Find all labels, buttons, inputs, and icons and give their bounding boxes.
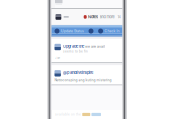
staticText: Check In — [104, 29, 119, 33]
staticText: Notes — [88, 14, 98, 19]
button[interactable]: Download on the App Store — [82, 113, 90, 116]
staticText: @pandliveinspire — [63, 70, 93, 75]
button[interactable] — [88, 29, 93, 34]
staticText: Upgrade the — [63, 44, 84, 49]
staticText: we are avail — [85, 44, 105, 48]
button[interactable]: Upgrade the — [51, 39, 122, 62]
button[interactable]: Profile — [55, 14, 61, 20]
staticText: 14 — [117, 15, 120, 19]
button[interactable]: Update Status — [54, 29, 84, 34]
button[interactable]: Notes — [84, 14, 120, 19]
staticText: and more — [99, 15, 114, 19]
staticText: seems to be fin — [63, 50, 88, 53]
staticText: Nettoconsping ang kuting mistering — [54, 78, 111, 82]
button[interactable]: Check In — [98, 29, 119, 34]
staticText: Like — [54, 56, 60, 60]
staticText: Update Status — [61, 29, 84, 33]
staticText: available on the — [55, 113, 81, 116]
button[interactable]: @pandliveinspire — [51, 65, 122, 84]
